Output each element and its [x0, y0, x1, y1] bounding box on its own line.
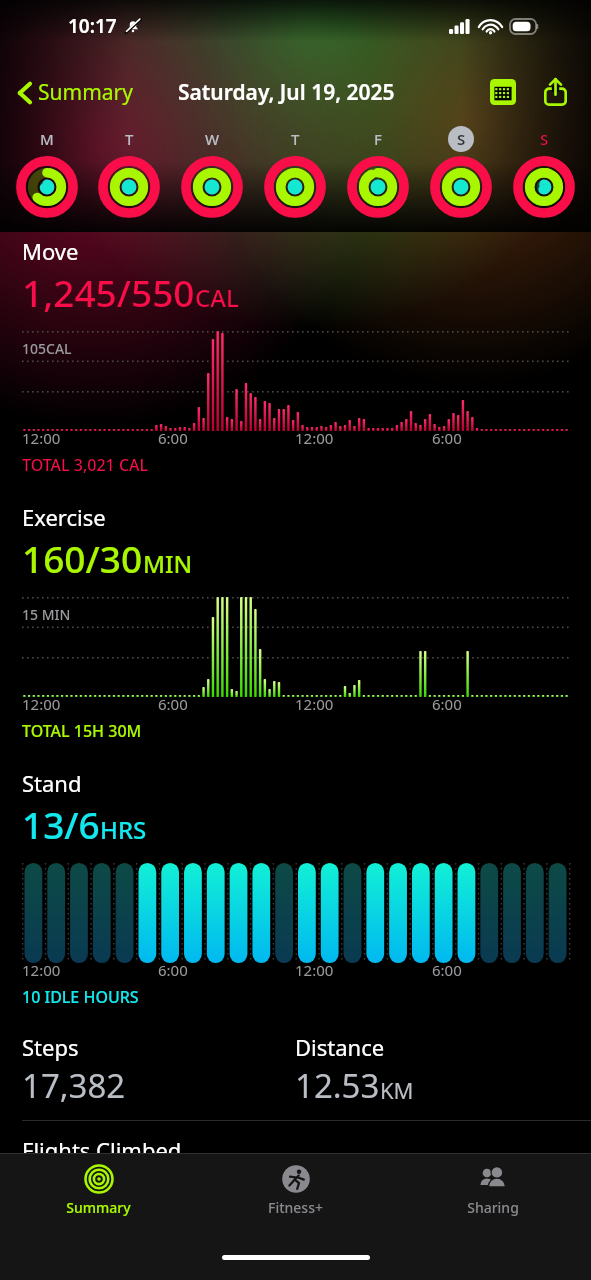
staticText: Flights Climbed — [22, 1135, 182, 1165]
staticText: Exercise — [22, 502, 106, 532]
staticText: 12.53 — [295, 1063, 380, 1108]
staticText: HRS — [100, 813, 147, 846]
button[interactable]: M — [6, 126, 88, 218]
staticText: W — [205, 129, 220, 149]
button[interactable]: W — [170, 126, 253, 218]
button[interactable]: Summary — [0, 1154, 197, 1217]
staticText: KM — [380, 1075, 414, 1105]
staticText: 12:00 — [295, 428, 334, 448]
staticText: 17,382 — [22, 1063, 126, 1108]
staticText: 13/6 — [22, 799, 100, 849]
button[interactable]: Distance — [295, 1032, 569, 1108]
staticText: 6:00 — [432, 428, 462, 448]
staticText: Steps — [22, 1032, 79, 1062]
staticText: 6:00 — [432, 694, 462, 714]
staticText: 160/30 — [22, 533, 143, 583]
staticText: 12:00 — [22, 694, 61, 714]
staticText: 6:00 — [432, 960, 462, 980]
button[interactable]: T — [253, 126, 336, 218]
staticText: TOTAL 15H 30M — [22, 720, 142, 742]
staticText: TOTAL 3,021 CAL — [22, 454, 149, 476]
staticText: Summary — [38, 78, 133, 107]
button[interactable]: T — [88, 126, 170, 218]
staticText: T — [291, 129, 300, 149]
staticText: 12:00 — [295, 960, 334, 980]
staticText: F — [374, 129, 382, 149]
staticText: 12:00 — [22, 960, 61, 980]
staticText: MIN — [143, 547, 193, 580]
staticText: 1,245/550 — [22, 267, 195, 317]
staticText: Fitness+ — [268, 1198, 323, 1217]
button[interactable]: F — [336, 126, 419, 218]
staticText: Distance — [295, 1032, 385, 1062]
staticText: 105CAL — [22, 339, 72, 358]
staticText: 15 MIN — [22, 605, 71, 624]
staticText: Summary — [66, 1198, 131, 1217]
staticText: S — [457, 129, 466, 149]
staticText: 6:00 — [158, 960, 188, 980]
staticText: T — [125, 129, 134, 149]
staticText: 12:00 — [295, 694, 334, 714]
staticText: 10:17 — [68, 13, 117, 39]
button[interactable]: Steps — [22, 1032, 295, 1108]
staticText: 6:00 — [158, 694, 188, 714]
button[interactable]: S — [419, 126, 502, 218]
button[interactable]: Calendar — [484, 73, 522, 111]
button[interactable]: Summary — [12, 74, 139, 111]
button[interactable]: Fitness+ — [197, 1154, 394, 1217]
button[interactable]: Sharing — [394, 1154, 591, 1217]
staticText: 12:00 — [22, 428, 61, 448]
staticText: M — [40, 129, 54, 149]
button[interactable]: Flights Climbed — [22, 1135, 182, 1211]
staticText: S — [540, 129, 549, 149]
staticText: Stand — [22, 768, 82, 798]
button[interactable]: Share — [538, 72, 573, 112]
staticText: Saturday, Jul 19, 2025 — [178, 78, 395, 107]
staticText: CAL — [195, 281, 239, 314]
staticText: 6:00 — [158, 428, 188, 448]
staticText: 10 IDLE HOURS — [22, 986, 139, 1008]
staticText: Move — [22, 236, 79, 266]
button[interactable]: S — [502, 126, 585, 218]
staticText: Sharing — [467, 1198, 519, 1217]
